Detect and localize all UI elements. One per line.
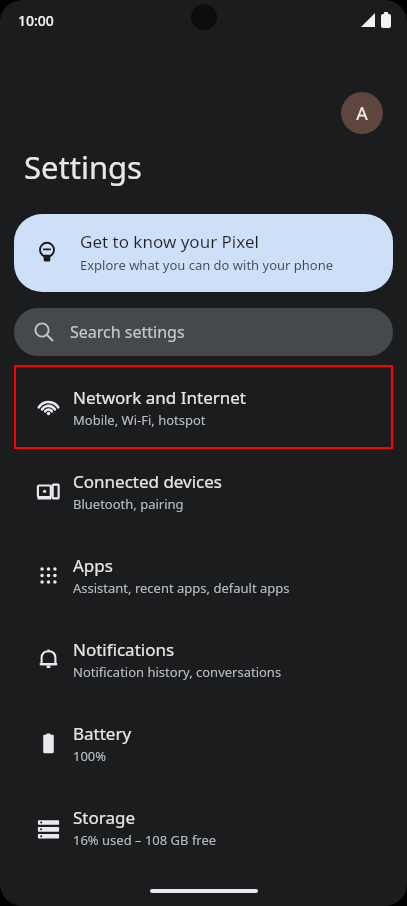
- button[interactable]: Account: [341, 92, 383, 134]
- staticText: Battery: [73, 722, 132, 745]
- staticText: 16% used – 108 GB free: [73, 831, 217, 849]
- staticText: Search settings: [70, 321, 185, 343]
- button[interactable]: Battery: [0, 701, 407, 785]
- staticText: Bluetooth, pairing: [73, 495, 184, 513]
- button[interactable]: Notifications: [0, 617, 407, 701]
- button[interactable]: Connected devices: [0, 449, 407, 533]
- staticText: Network and Internet: [73, 386, 246, 409]
- staticText: Settings: [24, 146, 142, 188]
- staticText: Get to know your Pixel: [80, 230, 259, 253]
- button[interactable]: Apps: [0, 533, 407, 617]
- staticText: Notification history, conversations: [73, 663, 282, 681]
- staticText: Apps: [73, 554, 113, 577]
- button[interactable]: Search settings: [14, 308, 393, 356]
- staticText: 10:00: [18, 11, 54, 30]
- button[interactable]: Storage: [0, 785, 407, 869]
- staticText: 100%: [73, 747, 107, 765]
- button[interactable]: Get to know your Pixel: [14, 214, 393, 292]
- staticText: Explore what you can do with your phone: [80, 256, 334, 274]
- staticText: Mobile, Wi-Fi, hotspot: [73, 411, 206, 429]
- staticText: Storage: [73, 806, 136, 829]
- staticText: A: [356, 101, 368, 126]
- staticText: Connected devices: [73, 470, 223, 493]
- staticText: Notifications: [73, 638, 175, 661]
- staticText: Assistant, recent apps, default apps: [73, 579, 290, 597]
